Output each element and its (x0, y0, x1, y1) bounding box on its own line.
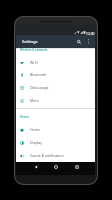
staticText: Home (30, 127, 40, 132)
staticText: Data usage (30, 85, 49, 90)
button[interactable]: More (16, 94, 95, 107)
button[interactable]: Home (16, 123, 95, 136)
button[interactable]: Search (73, 36, 84, 47)
button[interactable]: Bluetooth (16, 68, 95, 81)
staticText: More (30, 98, 39, 103)
staticText: Wireless & networks (20, 48, 48, 52)
staticText: Display (30, 140, 42, 145)
staticText: 12:30 (86, 31, 95, 35)
button[interactable]: Display (16, 136, 95, 149)
button[interactable]: Home (52, 163, 60, 171)
button[interactable]: More options (84, 37, 93, 46)
staticText: Sound & notification (30, 153, 64, 158)
button[interactable]: Sound & notification (16, 149, 95, 162)
button[interactable]: Wi-Fi (16, 56, 95, 69)
button[interactable]: Recents (73, 163, 81, 171)
button[interactable]: Data usage (16, 81, 95, 94)
staticText: Settings (22, 39, 38, 45)
staticText: Bluetooth (30, 72, 47, 77)
staticText: Wi-Fi (30, 60, 39, 65)
staticText: Device (20, 115, 29, 119)
button[interactable]: Back (32, 163, 40, 171)
